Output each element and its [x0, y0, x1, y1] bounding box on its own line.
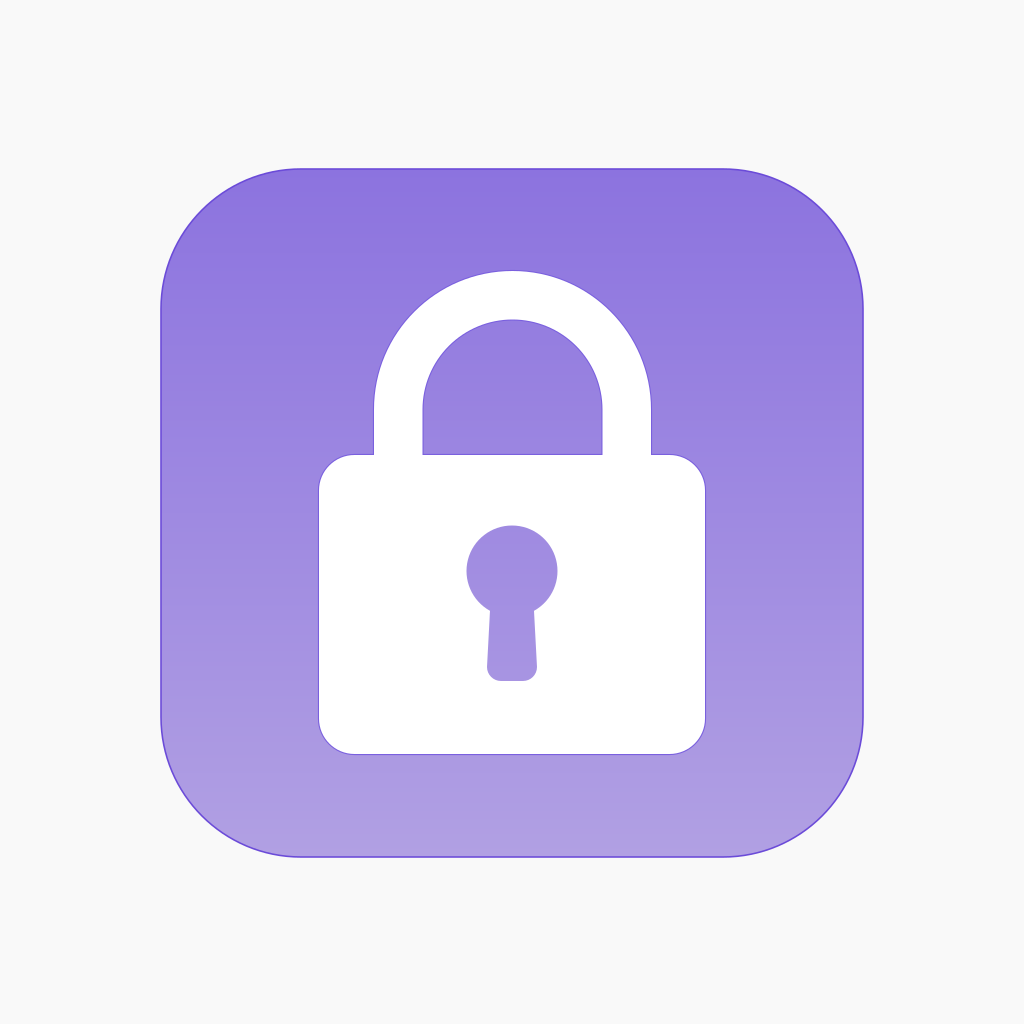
- button[interactable]: Locked: [161, 169, 863, 857]
